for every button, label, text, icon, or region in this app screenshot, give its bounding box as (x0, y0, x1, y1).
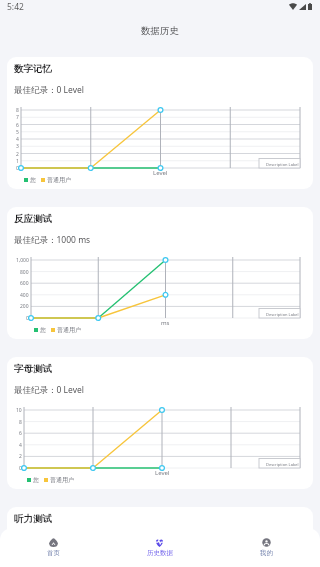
staticText: Description Label (266, 162, 299, 167)
staticText: 5:42 (7, 1, 24, 13)
staticText: 最佳纪录：1000 ms (14, 234, 91, 246)
staticText: 600 (20, 280, 29, 287)
staticText: 反应测试 (14, 213, 52, 225)
button[interactable]: 听力测试 (7, 507, 313, 567)
button[interactable]: 字母测试 (7, 357, 313, 489)
staticText: Description Label (266, 312, 299, 317)
staticText: 10 (16, 407, 22, 414)
staticText: ms (161, 319, 170, 327)
button[interactable]: 数字记忆 (7, 57, 313, 189)
staticText: 3 (16, 143, 19, 150)
staticText: Level (155, 469, 170, 477)
staticText: 2 (19, 453, 22, 460)
button[interactable]: 反应测试 (7, 207, 313, 339)
staticText: 普通用户 (57, 326, 81, 334)
staticText: 1 (16, 158, 19, 165)
staticText: 您 (30, 176, 36, 184)
staticText: 0 (26, 315, 29, 322)
staticText: 首页 (47, 549, 60, 557)
staticText: 最佳纪录：0 Level (14, 384, 84, 396)
staticText: 0 (16, 165, 19, 172)
staticText: 5 (16, 129, 19, 136)
button[interactable]: History data (106, 528, 213, 567)
staticText: 历史数据 (147, 549, 173, 557)
button[interactable]: Home (0, 528, 106, 567)
staticText: 400 (20, 292, 29, 299)
staticText: 数据历史 (141, 25, 179, 37)
staticText: 4 (16, 136, 19, 143)
staticText: Level (153, 169, 168, 177)
button[interactable]: Profile (213, 528, 320, 567)
staticText: 2 (16, 151, 19, 158)
staticText: 听力测试 (14, 513, 52, 525)
staticText: 6 (16, 122, 19, 129)
staticText: 7 (16, 114, 19, 121)
staticText: Description Label (266, 462, 299, 467)
staticText: 普通用户 (47, 176, 71, 184)
staticText: 您 (33, 476, 39, 484)
staticText: 6 (19, 430, 22, 437)
staticText: 字母测试 (14, 363, 52, 375)
staticText: 800 (20, 269, 29, 276)
staticText: 数字记忆 (14, 63, 52, 75)
staticText: 8 (19, 419, 22, 426)
staticText: 普通用户 (50, 476, 74, 484)
staticText: 4 (19, 442, 22, 449)
staticText: 1,000 (16, 257, 29, 264)
staticText: 0 (19, 465, 22, 472)
staticText: 8 (16, 107, 19, 114)
staticText: 您 (40, 326, 46, 334)
staticText: 我的 (260, 549, 273, 557)
staticText: 最佳纪录：0 Level (14, 84, 84, 96)
staticText: 200 (20, 303, 29, 310)
